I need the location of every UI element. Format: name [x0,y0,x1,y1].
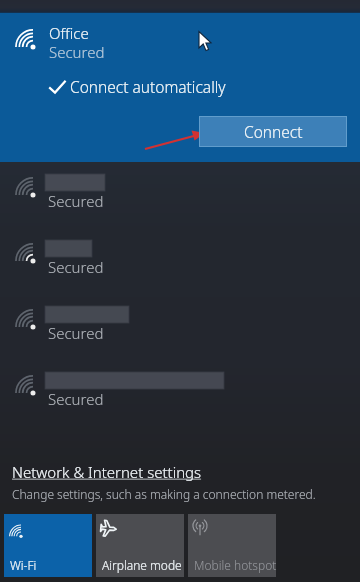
staticText: Mobile hotspot [194,557,277,573]
staticText: Connect [244,121,303,142]
button[interactable]: Airplane mode [96,514,184,577]
button[interactable]: Office [0,13,360,71]
button[interactable]: Mobile hotspot [188,514,276,577]
staticText: Secured [48,191,104,211]
button[interactable]: Secured [0,229,360,295]
button[interactable]: Secured [0,163,360,229]
button[interactable]: Connect [200,117,346,146]
staticText: Secured [48,257,104,277]
staticText: Change settings, such as making a connec… [12,486,316,502]
staticText: Office [49,23,89,43]
staticText: Connect automatically [70,76,226,97]
staticText: Secured [48,389,104,409]
staticText: Airplane mode [102,557,182,573]
staticText: Secured [49,42,105,62]
staticText: Wi-Fi [10,557,37,573]
button[interactable]: Network & Internet settings [12,462,202,482]
button[interactable]: Wi-Fi [4,514,92,577]
button[interactable]: Connect automatically [36,71,246,101]
staticText: Secured [48,323,104,343]
button[interactable]: Secured [0,295,360,361]
button[interactable]: Secured [0,361,360,427]
